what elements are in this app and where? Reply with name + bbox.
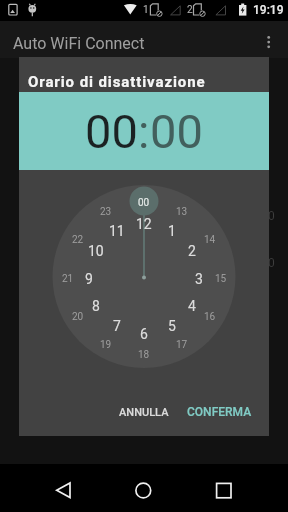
button[interactable] <box>200 464 248 512</box>
staticText: 15 <box>215 273 227 285</box>
button[interactable] <box>38 464 86 512</box>
staticText: 1 <box>143 4 149 16</box>
staticText: 5 <box>168 318 176 334</box>
staticText: 4 <box>188 298 196 314</box>
button[interactable]: ANNULLA <box>119 406 169 419</box>
staticText: 22 <box>72 234 84 246</box>
button[interactable] <box>120 464 168 512</box>
staticText: 11 <box>109 223 125 239</box>
staticText: 10 <box>88 243 104 259</box>
staticText: CONFERMA <box>187 405 252 419</box>
staticText: 9 <box>85 271 93 287</box>
staticText: 18 <box>138 349 150 361</box>
staticText: 2 <box>188 243 196 259</box>
staticText: 14 <box>204 234 216 246</box>
staticText: 19:19 <box>253 3 284 17</box>
staticText: 0 <box>268 209 275 223</box>
staticText: 8 <box>92 298 100 314</box>
staticText: 23 <box>100 206 112 218</box>
staticText: 16 <box>204 311 216 323</box>
staticText: 13 <box>176 206 188 218</box>
staticText: 21 <box>62 273 74 285</box>
staticText: 3 <box>195 271 203 287</box>
staticText: Orario di disattivazione <box>28 73 206 91</box>
button[interactable]: CONFERMA <box>187 405 252 419</box>
staticText: 12 <box>136 216 152 232</box>
staticText: 7 <box>113 318 121 334</box>
button[interactable] <box>254 21 288 58</box>
staticText: Auto WiFi Connect <box>13 34 145 53</box>
staticText: 00 <box>150 104 203 159</box>
staticText: 6 <box>140 326 148 342</box>
staticText: 17 <box>176 339 188 351</box>
staticText: : <box>138 104 150 159</box>
staticText: 20 <box>72 311 84 323</box>
staticText: ANNULLA <box>119 406 169 419</box>
staticText: 00 <box>138 197 150 209</box>
staticText: 00 <box>85 104 138 159</box>
staticText: 0 <box>268 256 275 270</box>
staticText: 1 <box>168 223 176 239</box>
staticText: 19 <box>100 339 112 351</box>
staticText: 2 <box>187 4 193 16</box>
